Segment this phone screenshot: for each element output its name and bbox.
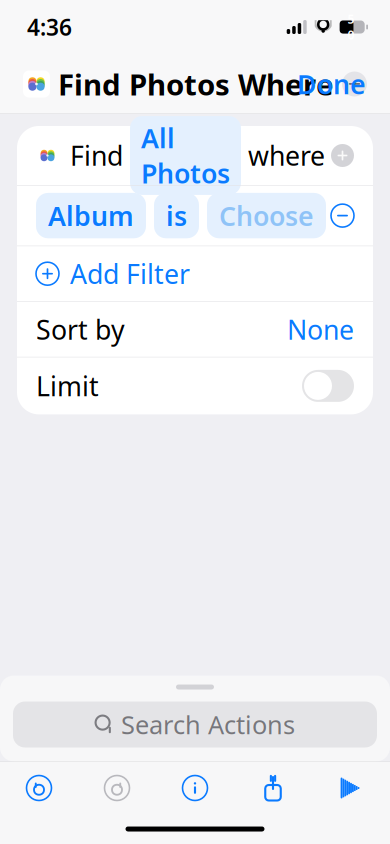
staticText: Album <box>48 198 134 233</box>
button[interactable]: Redo <box>78 762 156 814</box>
button[interactable]: Info <box>156 762 234 814</box>
button[interactable]: Done <box>285 60 378 108</box>
staticText: Choose <box>219 198 314 233</box>
button[interactable]: is <box>154 193 199 238</box>
button[interactable]: Choose <box>207 193 326 238</box>
button[interactable]: Sort by <box>17 302 373 357</box>
button[interactable]: Limit toggle, off <box>302 370 354 402</box>
button[interactable]: Add Filter <box>17 246 373 301</box>
button[interactable]: Find <box>17 126 373 185</box>
staticText: All Photos <box>141 120 230 191</box>
staticText: where <box>248 138 325 173</box>
button[interactable]: Undo <box>0 762 78 814</box>
button[interactable]: Album <box>36 193 146 238</box>
button[interactable]: Search Actions <box>0 689 390 761</box>
button[interactable]: Share <box>234 762 312 814</box>
staticText: 50 <box>348 11 355 43</box>
staticText: Limit <box>36 368 99 404</box>
staticText: Done <box>297 66 366 102</box>
staticText: Find Photos Where <box>58 64 334 103</box>
staticText: Find <box>70 138 123 173</box>
button[interactable]: Remove filter <box>331 204 354 227</box>
staticText: None <box>287 312 354 347</box>
staticText: 4:36 <box>27 12 72 42</box>
staticText: is <box>166 198 187 233</box>
staticText: Add Filter <box>70 256 190 291</box>
staticText: Sort by <box>36 312 125 347</box>
button[interactable]: Shortcut options <box>342 71 367 96</box>
staticText: Search Actions <box>121 708 295 741</box>
button[interactable]: Run shortcut <box>312 762 390 814</box>
